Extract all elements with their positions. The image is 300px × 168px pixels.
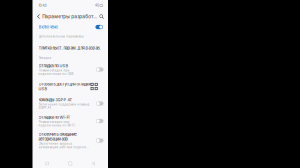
button[interactable]: Отладка по Wi-Fi	[32, 112, 108, 130]
button[interactable]: Назад	[35, 12, 42, 21]
staticText: Отладка	[38, 56, 51, 60]
button[interactable]: Отладка по USB	[32, 61, 108, 78]
staticText: Режим отладки при подключении по Wi-Fi	[38, 120, 75, 127]
staticText: Режим отладки при подключении по USB	[38, 69, 73, 76]
staticText: Отладка по USB	[38, 63, 68, 68]
staticText: Дополнительные параметры	[38, 35, 83, 38]
staticText: 13:43	[38, 3, 46, 7]
button[interactable]: Назад	[85, 159, 102, 167]
button[interactable]: Отключить ожидание авторизации adb	[32, 130, 108, 151]
button[interactable]: Отозвать доступ для отладки USB	[32, 78, 108, 95]
button[interactable]: Плитка быст. парам. для разраб.	[32, 41, 108, 55]
staticText: Отключение запроса авторизации adb при п…	[38, 142, 90, 149]
staticText: Отключить ожидание авторизации adb	[38, 132, 76, 141]
button[interactable]: Последние приложения	[39, 159, 56, 167]
staticText: Команды 3GPP AT	[38, 97, 72, 102]
staticText: Включение поддержки команд 3GPP AT	[38, 103, 89, 110]
button[interactable]: Команды 3GPP AT	[32, 95, 108, 112]
staticText: Отладка по Wi-Fi	[38, 115, 69, 120]
button[interactable]: Поиск	[98, 12, 105, 21]
staticText: Параметры разработ…	[42, 14, 97, 19]
staticText: 4G	[95, 4, 99, 7]
staticText: Отозвать доступ для отладки USB	[38, 82, 90, 91]
button[interactable]: Главный экран	[62, 159, 79, 167]
button[interactable]: Включено	[32, 22, 108, 32]
staticText: Включено	[38, 24, 57, 29]
staticText: Плитка быст. парам. для разраб.	[38, 45, 100, 50]
